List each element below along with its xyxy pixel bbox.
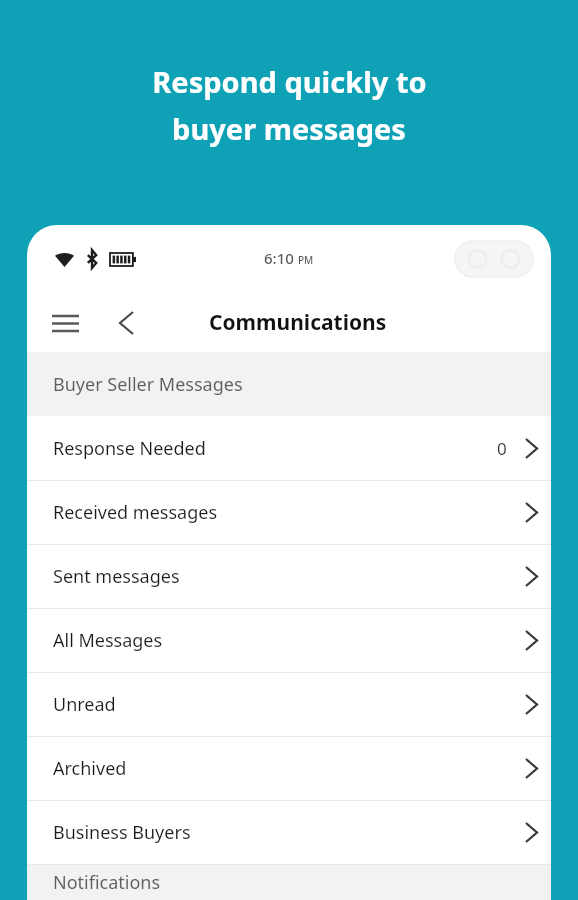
button[interactable]: Received messages (27, 481, 551, 544)
staticText: Archived (53, 756, 127, 781)
button[interactable]: Response Needed (27, 416, 551, 480)
staticText: 6:10 (264, 248, 294, 268)
staticText: PM (298, 253, 314, 267)
staticText: Unread (53, 692, 116, 717)
button[interactable]: Archived (27, 737, 551, 800)
staticText: All Messages (53, 628, 163, 653)
staticText: Communications (209, 308, 387, 337)
staticText: Notifications (53, 870, 161, 895)
staticText: 0 (497, 437, 507, 460)
button[interactable]: Sent messages (27, 545, 551, 608)
button[interactable]: Back (103, 300, 149, 346)
button[interactable]: Menu (41, 299, 89, 347)
staticText: Business Buyers (53, 820, 191, 845)
staticText: Sent messages (53, 564, 180, 589)
staticText: Received messages (53, 500, 217, 525)
button[interactable]: All Messages (27, 609, 551, 672)
staticText: buyer messages (172, 109, 406, 148)
button[interactable]: Unread (27, 673, 551, 736)
staticText: Respond quickly to (152, 62, 427, 101)
staticText: Response Needed (53, 436, 206, 461)
staticText: Buyer Seller Messages (53, 372, 243, 397)
button[interactable]: Business Buyers (27, 801, 551, 864)
